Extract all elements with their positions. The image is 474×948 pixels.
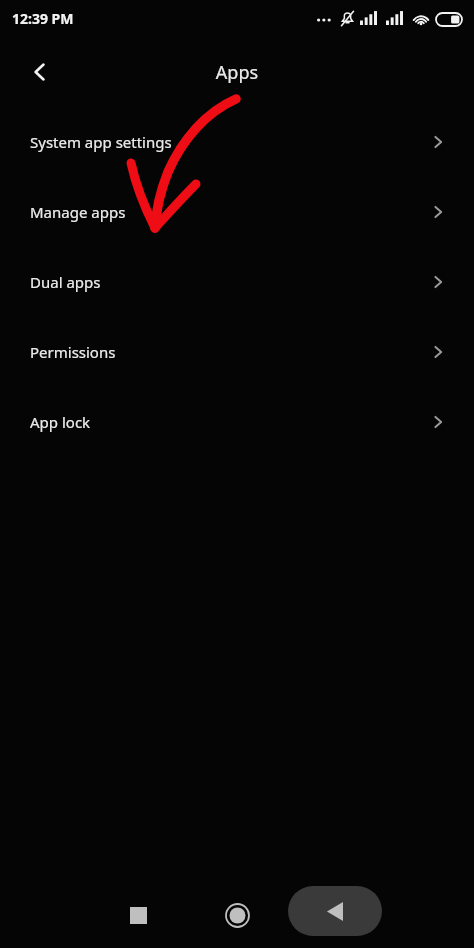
button[interactable]: App lock <box>0 387 474 457</box>
staticText: Permissions <box>30 342 116 362</box>
staticText: App lock <box>30 412 91 432</box>
button[interactable]: Dual apps <box>0 247 474 317</box>
button[interactable]: Back <box>18 50 62 94</box>
staticText: Apps <box>0 60 474 85</box>
button[interactable]: Recent apps <box>116 893 160 937</box>
staticText: Manage apps <box>30 202 126 222</box>
staticText: System app settings <box>30 132 172 152</box>
staticText: 12:39 PM <box>12 9 74 28</box>
button[interactable]: Manage apps <box>0 177 474 247</box>
button[interactable]: Home <box>215 893 259 937</box>
staticText: Dual apps <box>30 272 101 292</box>
button[interactable]: Permissions <box>0 317 474 387</box>
button[interactable]: Back <box>288 886 382 936</box>
button[interactable]: System app settings <box>0 107 474 177</box>
